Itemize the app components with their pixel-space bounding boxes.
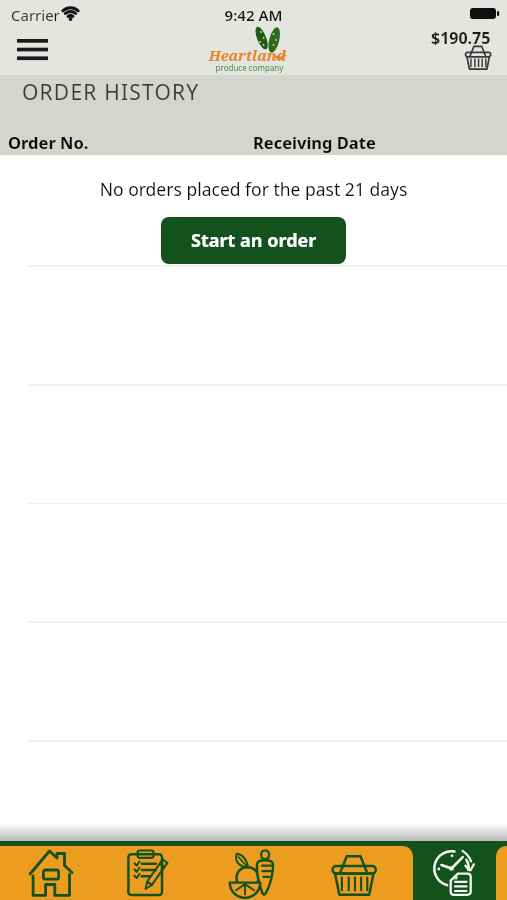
staticText: ORDER HISTORY <box>22 78 200 107</box>
button[interactable] <box>458 40 498 74</box>
staticText: Carrier <box>11 5 60 25</box>
staticText: Receiving Date <box>253 131 376 153</box>
button[interactable] <box>204 843 296 900</box>
staticText: produce company <box>0 62 503 73</box>
staticText: $190.75 <box>431 27 491 49</box>
staticText: 9:42 AM <box>0 5 507 25</box>
staticText: Heartland <box>0 45 501 65</box>
button[interactable] <box>8 843 96 900</box>
button[interactable] <box>104 843 192 900</box>
staticText: No orders placed for the past 21 days <box>0 177 507 201</box>
button[interactable] <box>413 839 496 900</box>
staticText: Order No. <box>8 131 89 153</box>
button[interactable] <box>9 31 56 65</box>
button[interactable]: Start an order <box>161 217 346 264</box>
staticText: Start an order <box>191 228 317 253</box>
button[interactable] <box>306 843 398 900</box>
